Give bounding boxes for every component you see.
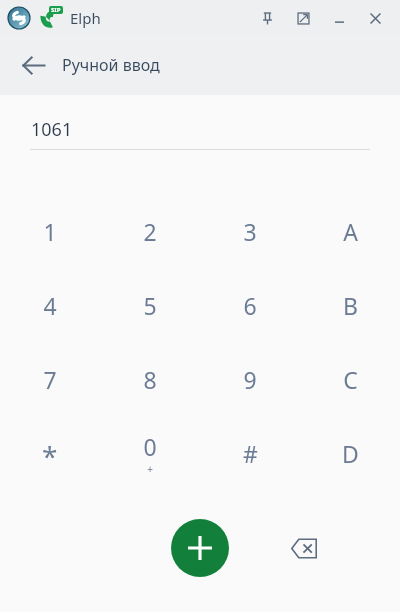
button[interactable]: 1 bbox=[0, 194, 100, 268]
staticText: # bbox=[243, 438, 258, 469]
staticText: 3 bbox=[243, 216, 257, 247]
staticText: 9 bbox=[243, 364, 257, 395]
button[interactable]: Call bbox=[171, 519, 229, 577]
button[interactable]: 7 bbox=[0, 342, 100, 416]
staticText: Ручной ввод bbox=[62, 54, 160, 76]
staticText: 0 bbox=[143, 431, 157, 462]
button[interactable]: Restore bbox=[288, 3, 318, 33]
button[interactable]: 8 bbox=[100, 342, 200, 416]
staticText: B bbox=[343, 290, 358, 321]
button[interactable]: 4 bbox=[0, 268, 100, 342]
staticText: + bbox=[147, 462, 153, 476]
button[interactable]: D bbox=[300, 416, 400, 490]
staticText: 6 bbox=[243, 290, 257, 321]
button[interactable]: 6 bbox=[200, 268, 300, 342]
staticText: Elph bbox=[70, 8, 101, 28]
button[interactable]: A bbox=[300, 194, 400, 268]
staticText: SIP bbox=[51, 6, 61, 14]
staticText: * bbox=[42, 437, 58, 475]
staticText: 1 bbox=[43, 216, 57, 247]
button[interactable]: 3 bbox=[200, 194, 300, 268]
button[interactable]: Back bbox=[12, 44, 54, 86]
staticText: 5 bbox=[143, 290, 157, 321]
button[interactable]: B bbox=[300, 268, 400, 342]
button[interactable]: Backspace bbox=[282, 526, 326, 570]
staticText: 2 bbox=[143, 216, 157, 247]
button[interactable]: C bbox=[300, 342, 400, 416]
button[interactable]: 9 bbox=[200, 342, 300, 416]
staticText: A bbox=[343, 216, 358, 247]
button[interactable]: 2 bbox=[100, 194, 200, 268]
button[interactable]: # bbox=[200, 416, 300, 490]
button[interactable]: * bbox=[0, 416, 100, 490]
staticText: C bbox=[343, 364, 358, 395]
button[interactable]: Close bbox=[360, 3, 390, 33]
button[interactable]: 5 bbox=[100, 268, 200, 342]
button[interactable]: Pin bbox=[252, 3, 282, 33]
button[interactable]: Minimize bbox=[324, 3, 354, 33]
button[interactable]: 0 bbox=[100, 416, 200, 490]
staticText: 7 bbox=[43, 364, 57, 395]
staticText: 4 bbox=[43, 290, 57, 321]
staticText: 1061 bbox=[31, 117, 73, 142]
staticText: 8 bbox=[143, 364, 157, 395]
staticText: D bbox=[342, 438, 359, 469]
